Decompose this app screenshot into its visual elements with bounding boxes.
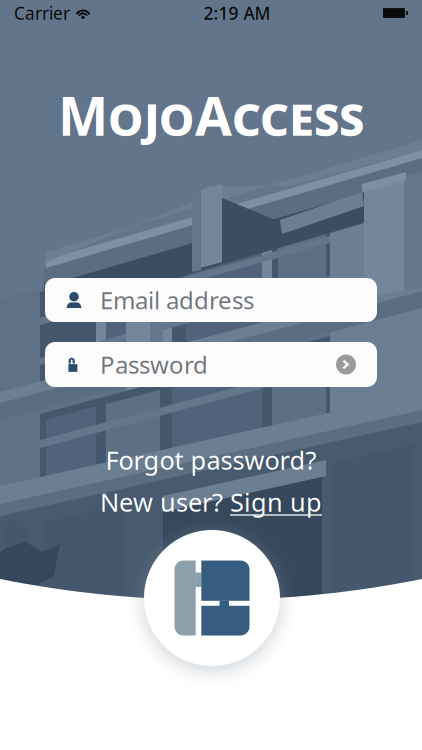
button[interactable]: Forgot password?: [0, 446, 422, 474]
button[interactable]: Email address: [45, 278, 377, 322]
staticText: Carrier: [14, 1, 70, 24]
staticText: Sign up: [230, 485, 322, 519]
button[interactable]: Password: [45, 342, 377, 387]
staticText: New user?: [100, 485, 230, 519]
staticText: Password: [100, 349, 208, 380]
staticText: Email address: [100, 284, 254, 316]
button[interactable]: Sign up: [230, 485, 322, 519]
staticText: MojoAccess: [58, 80, 364, 150]
staticText: 2:19 AM: [203, 1, 270, 24]
staticText: Forgot password?: [105, 443, 316, 477]
